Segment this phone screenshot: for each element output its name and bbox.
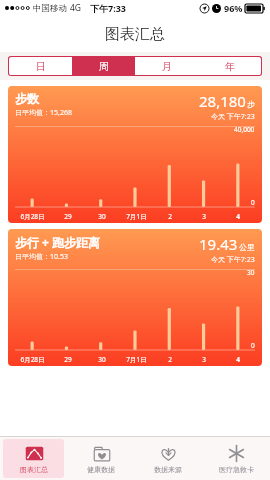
staticText: 2 [168, 212, 172, 221]
staticText: 步 [247, 99, 255, 109]
staticText: 6月28日 [20, 355, 45, 364]
staticText: 19.43 [199, 234, 238, 254]
button[interactable]: 图表汇总 [3, 439, 64, 478]
staticText: 4G [70, 2, 82, 14]
staticText: 步行 + 跑步距离 [15, 234, 101, 250]
staticText: 中国移动 [33, 3, 67, 14]
staticText: 医疗急救卡 [219, 465, 254, 474]
staticText: 健康数据 [87, 465, 115, 474]
staticText: 28,180 [199, 91, 246, 111]
staticText: 3 [202, 212, 206, 221]
staticText: 0 [251, 198, 255, 207]
staticText: 30 [98, 212, 106, 221]
staticText: 图表汇总 [20, 465, 48, 474]
staticText: 7月1日 [126, 355, 147, 364]
staticText: 40,000 [234, 125, 255, 134]
button[interactable]: 健康数据 [67, 437, 134, 480]
staticText: 日平均值：15,268 [15, 108, 72, 118]
button[interactable]: 医疗急救卡 [202, 437, 270, 480]
staticText: 今天 下午7:23 [211, 112, 255, 122]
staticText: 2 [168, 355, 172, 364]
staticText: 日 [36, 60, 46, 73]
staticText: 3 [202, 355, 206, 364]
staticText: 4 [236, 212, 240, 221]
staticText: 数据来源 [154, 465, 182, 474]
button[interactable]: 日 [9, 57, 72, 75]
staticText: 日平均值：10.53 [15, 252, 68, 262]
button[interactable]: 步数 [8, 86, 262, 223]
staticText: 图表汇总 [105, 25, 165, 44]
staticText: 7月1日 [126, 212, 147, 221]
staticText: 今天 下午7:23 [211, 255, 255, 265]
staticText: 29 [64, 355, 72, 364]
staticText: 6月28日 [20, 212, 45, 221]
staticText: 步数 [15, 91, 39, 106]
staticText: 30 [98, 355, 106, 364]
staticText: 月 [162, 60, 172, 73]
button[interactable]: 步行 + 跑步距离 [8, 229, 262, 366]
button[interactable]: 数据来源 [134, 437, 202, 480]
staticText: 下午7:33 [90, 2, 126, 14]
button[interactable]: 年 [198, 57, 261, 75]
staticText: 年 [225, 60, 235, 73]
staticText: 公里 [239, 242, 255, 252]
staticText: 4 [236, 355, 240, 364]
staticText: 96% [224, 2, 243, 14]
staticText: 30 [247, 268, 255, 277]
staticText: 29 [64, 212, 72, 221]
button[interactable]: 月 [135, 57, 198, 75]
staticText: 0 [251, 341, 255, 350]
staticText: 周 [99, 60, 109, 73]
button[interactable]: 周 [72, 57, 135, 75]
